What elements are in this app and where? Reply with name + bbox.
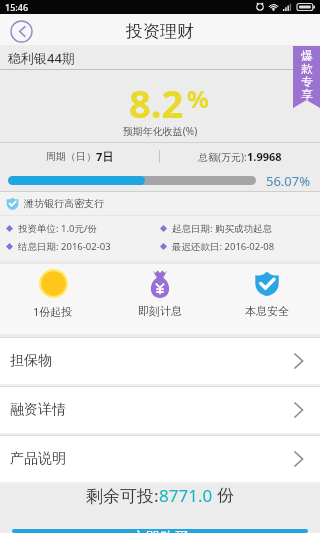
- staticText: 预期年化收益(%): [0, 124, 320, 137]
- staticText: 1份起投: [33, 304, 73, 319]
- button[interactable]: 本息安全: [213, 264, 320, 318]
- staticText: 结息日期: 2016-02-03: [18, 240, 111, 253]
- staticText: 产品说明: [10, 450, 66, 468]
- staticText: 享: [301, 87, 313, 100]
- button[interactable]: 即刻计息: [106, 264, 213, 318]
- button[interactable]: 1份起投: [0, 264, 106, 319]
- staticText: 周期（日）: [46, 150, 96, 163]
- staticText: 融资详情: [10, 401, 66, 419]
- staticText: 担保物: [10, 352, 52, 370]
- button[interactable]: 产品说明: [0, 436, 320, 482]
- staticText: 投资理财: [126, 21, 194, 42]
- staticText: 立即购买: [132, 529, 188, 533]
- staticText: 15:46: [5, 1, 29, 13]
- staticText: 总额(万元):: [198, 150, 247, 164]
- staticText: 8.2: [129, 77, 184, 129]
- staticText: 份: [217, 485, 234, 506]
- staticText: 款: [301, 61, 313, 74]
- staticText: 爆: [301, 48, 313, 61]
- staticText: 即刻计息: [138, 304, 182, 318]
- staticText: 稳利银44期: [8, 49, 75, 67]
- staticText: 投资单位: 1.0元/份: [18, 222, 97, 235]
- button[interactable]: 立即购买: [12, 529, 308, 533]
- button[interactable]: 担保物: [0, 338, 320, 384]
- button[interactable]: Back: [10, 20, 33, 43]
- staticText: 1.9968: [247, 149, 282, 164]
- staticText: 最迟还款日: 2016-02-08: [172, 240, 275, 253]
- button[interactable]: 融资详情: [0, 387, 320, 433]
- staticText: 56.07%: [266, 172, 311, 190]
- staticText: 7日: [96, 149, 114, 164]
- staticText: %: [187, 82, 209, 115]
- staticText: 起息日期: 购买成功起息: [172, 222, 273, 235]
- staticText: 本息安全: [245, 304, 289, 318]
- staticText: 专: [301, 74, 313, 87]
- staticText: 剩余可投:: [86, 484, 159, 507]
- staticText: 潍坊银行高密支行: [24, 197, 104, 210]
- staticText: 8771.0: [159, 484, 217, 507]
